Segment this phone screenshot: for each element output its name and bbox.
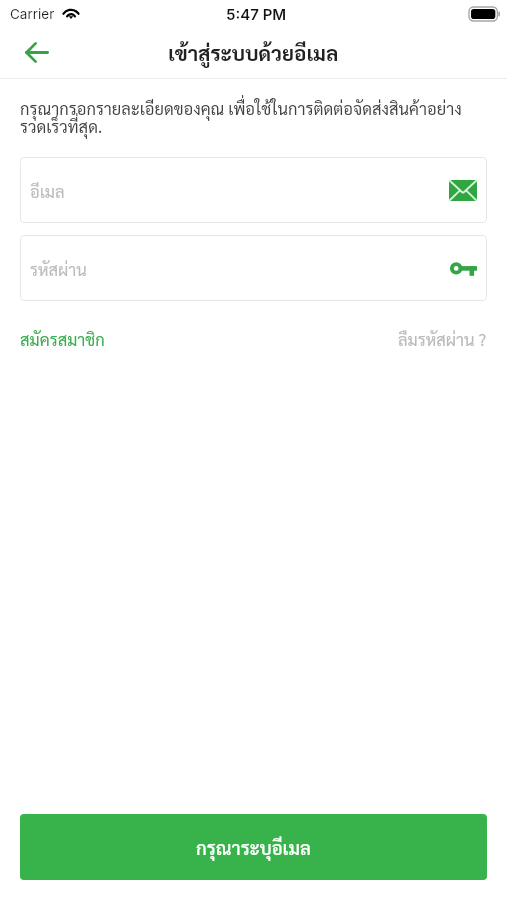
button[interactable]: รหัสผ่าน (20, 235, 487, 301)
button[interactable]: อีเมล (20, 157, 487, 223)
button[interactable]: Back (17, 32, 57, 72)
staticText: รหัสผ่าน (30, 258, 87, 279)
staticText: เข้าสู่ระบบด้วยอีเมล (168, 39, 339, 66)
staticText: อีเมล (30, 180, 65, 201)
button[interactable]: กรุณาระบุอีเมล (20, 814, 487, 880)
staticText: กรุณาระบุอีเมล (196, 835, 311, 859)
staticText: 5:47 PM (226, 5, 287, 23)
button[interactable]: ลืมรหัสผ่าน ? (398, 328, 487, 349)
staticText: Carrier (10, 6, 55, 22)
staticText: กรุณากรอกรายละเอียดของคุณ เพื่อใช้ในการต… (20, 97, 477, 137)
button[interactable]: สมัครสมาชิก (20, 328, 105, 349)
